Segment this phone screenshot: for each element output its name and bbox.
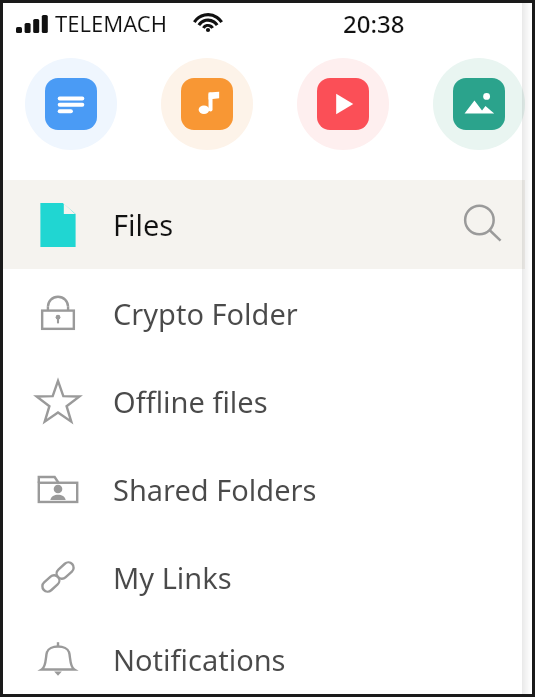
button[interactable]: Music [161,58,253,150]
button[interactable]: Documents [25,58,117,150]
staticText: My Links [113,558,232,597]
staticText: Offline files [113,382,268,421]
button[interactable]: Crypto Folder [3,269,525,357]
button[interactable]: Notifications [3,621,525,697]
staticText: Files [113,205,174,244]
button[interactable]: Shared Folders [3,445,525,533]
button[interactable]: My Links [3,533,525,621]
button[interactable]: Photos [433,58,525,150]
staticText: Crypto Folder [113,294,298,333]
button[interactable]: Search [455,196,513,254]
button[interactable]: Offline files [3,357,525,445]
staticText: 20:38 [343,7,405,40]
button[interactable]: Videos [297,58,389,150]
staticText: TELEMACH [55,8,168,38]
staticText: Notifications [113,640,286,679]
staticText: Shared Folders [113,470,317,509]
button[interactable]: Files [3,180,525,269]
